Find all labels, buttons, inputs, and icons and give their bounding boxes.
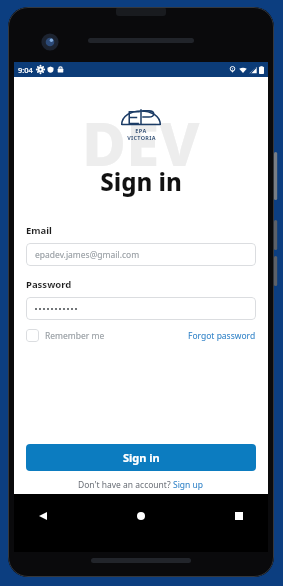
staticText: EPA — [135, 127, 147, 134]
button[interactable]: Recent apps — [224, 501, 254, 531]
staticText: 9:04 — [18, 65, 33, 75]
staticText: Password — [26, 278, 72, 291]
button[interactable]: Forgot password — [188, 330, 256, 342]
staticText: Remember me — [45, 330, 105, 342]
staticText: Email — [26, 224, 52, 237]
staticText: DEV — [82, 102, 200, 166]
staticText: Sign in — [14, 165, 268, 198]
staticText: VICTORIA — [127, 134, 156, 141]
button[interactable]: Back — [28, 501, 58, 531]
button[interactable]: Home — [126, 501, 156, 531]
button[interactable]: Sign in — [26, 444, 256, 471]
button[interactable]: Sign up — [173, 479, 204, 491]
staticText: epadev.james@gmail.com — [35, 249, 140, 261]
staticText: Sign up — [173, 479, 204, 491]
button[interactable]: epadev.james@gmail.com — [26, 243, 256, 266]
staticText: Don't have an account? — [78, 479, 173, 491]
staticText: Sign in — [123, 450, 160, 465]
button[interactable] — [26, 297, 256, 320]
staticText: Forgot password — [188, 330, 256, 342]
button[interactable]: Remember me — [26, 329, 105, 342]
